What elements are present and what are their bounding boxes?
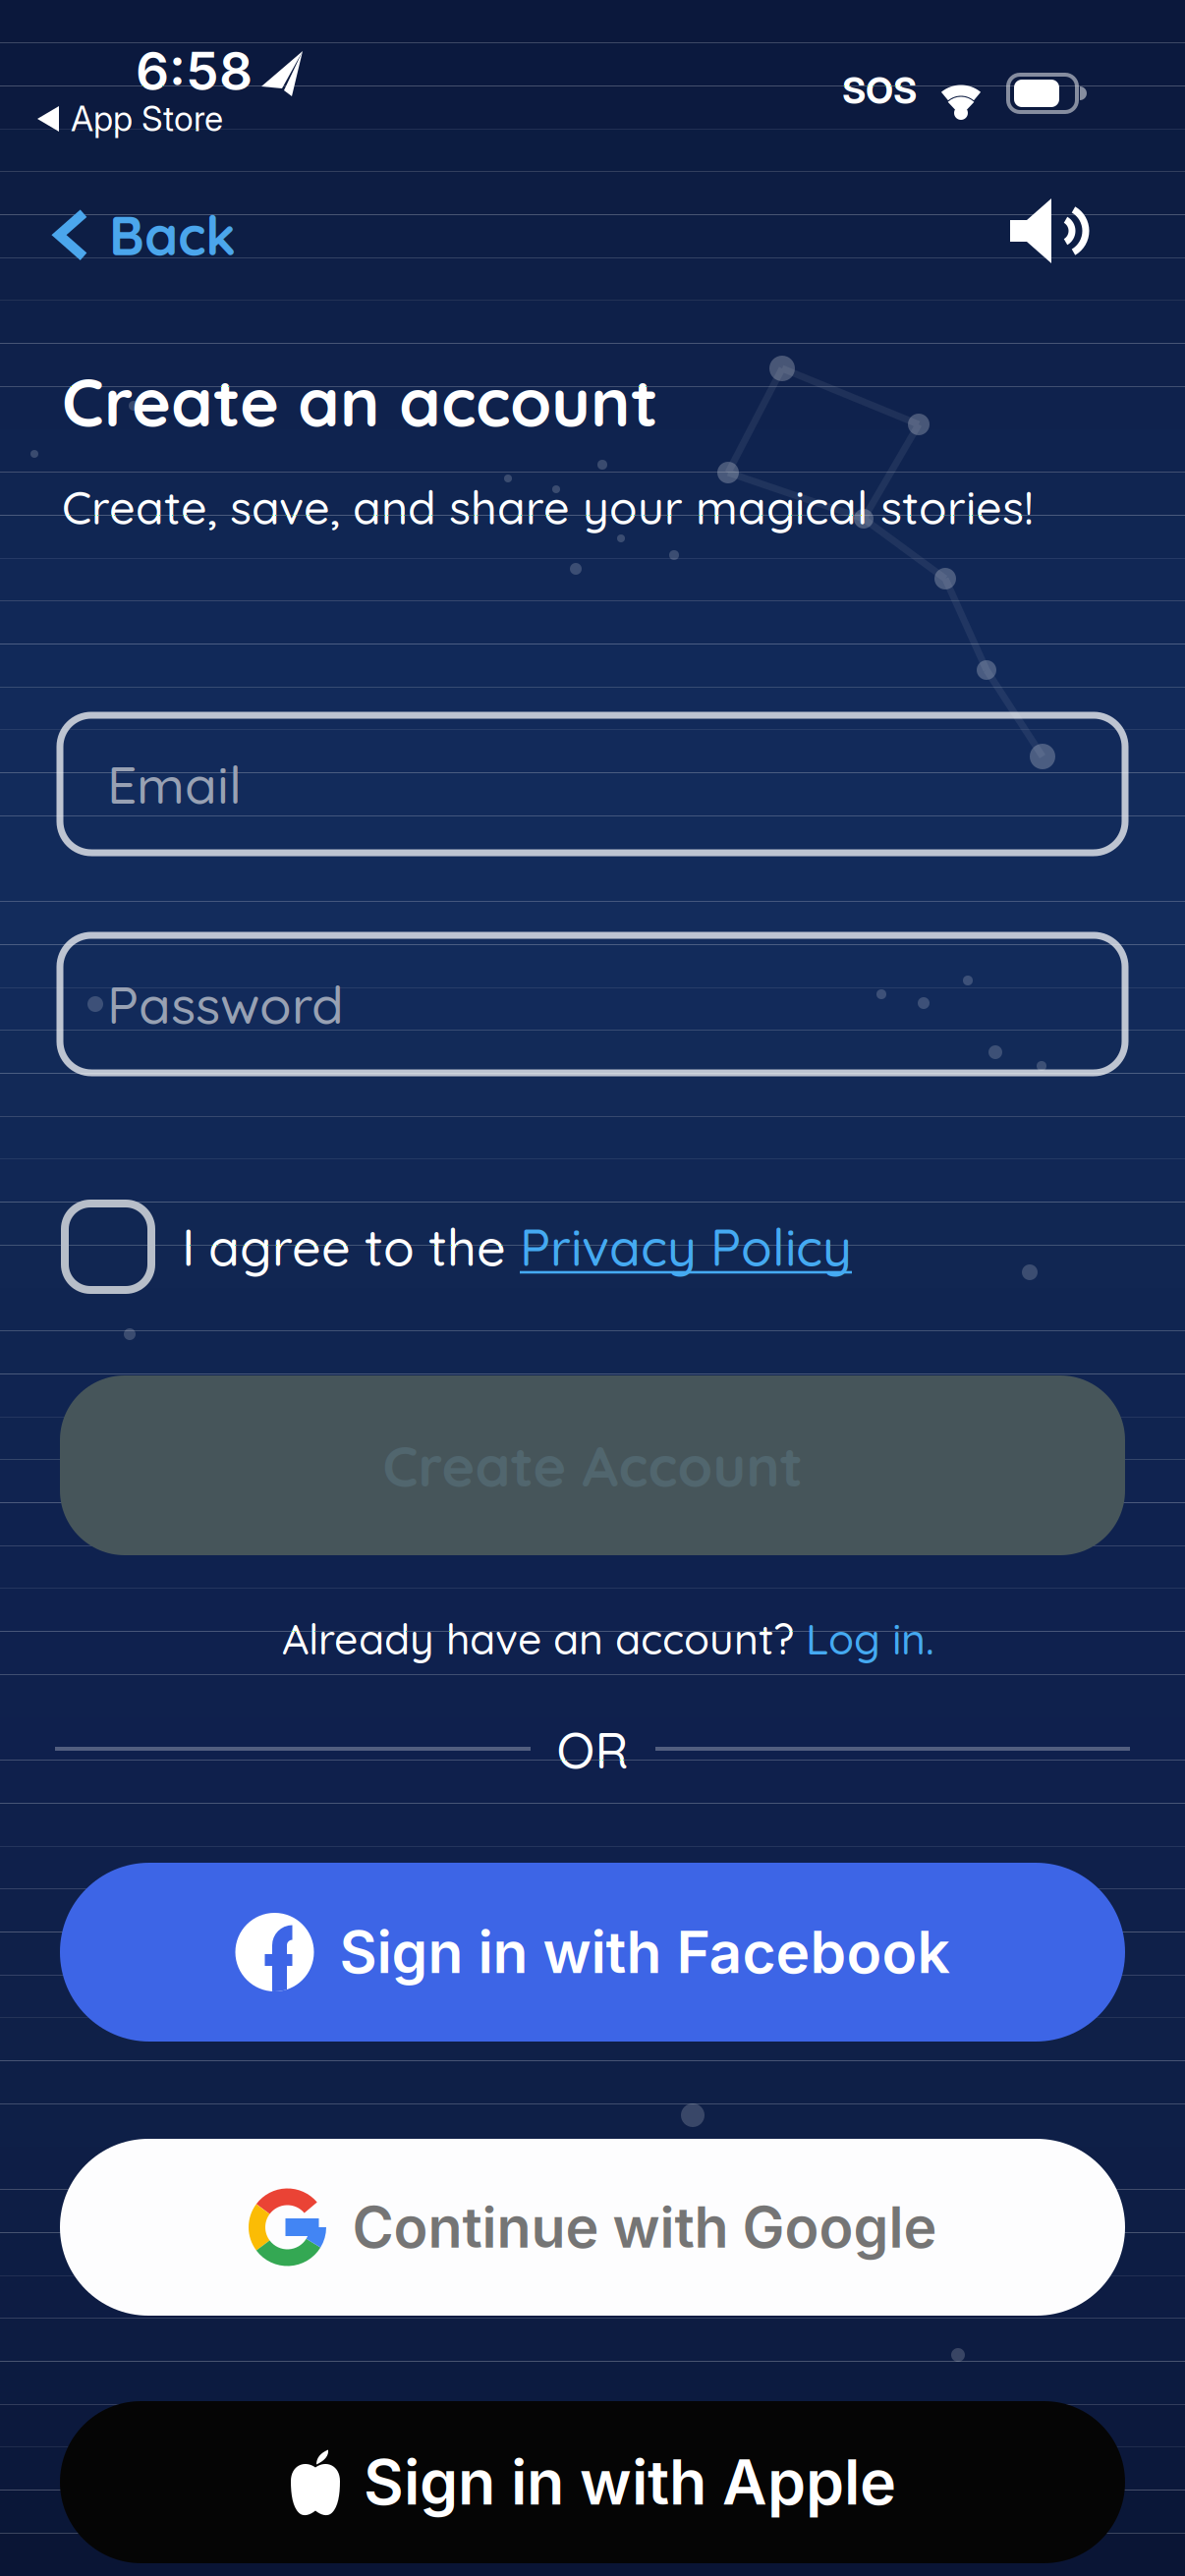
staticText: Password [107, 971, 344, 1037]
button[interactable]: Already have an account? [282, 1609, 934, 1668]
staticText: Log in. [806, 1613, 934, 1665]
staticText: Already have an account? [282, 1613, 806, 1665]
staticText: Back [109, 201, 236, 269]
button[interactable]: Back [59, 201, 236, 269]
staticText: Sign in with Apple [364, 2445, 896, 2519]
button[interactable]: Sign in with Facebook [60, 1863, 1125, 2042]
staticText: Sign in with Facebook [339, 1917, 950, 1987]
button[interactable]: Privacy Policy [182, 1204, 852, 1290]
staticText: OR [557, 1719, 628, 1781]
staticText: Privacy Policy [520, 1215, 852, 1279]
staticText: App Store [71, 98, 223, 139]
button[interactable]: I agree to the Privacy Policy [65, 1204, 151, 1290]
staticText: SOS [842, 68, 917, 113]
staticText: Create an account [62, 360, 658, 443]
staticText: I agree to the [182, 1215, 520, 1279]
button[interactable]: Sound [1010, 198, 1091, 263]
button[interactable]: Password [60, 935, 1125, 1073]
staticText: 6:58 [136, 39, 253, 103]
button[interactable]: Sign in with Apple [60, 2401, 1125, 2563]
button[interactable]: Email [60, 715, 1125, 853]
staticText: Create Account [383, 1430, 802, 1501]
staticText: Email [107, 751, 242, 817]
button[interactable]: Continue with Google [60, 2139, 1125, 2316]
button[interactable]: Back to App Store [37, 98, 223, 139]
staticText: Continue with Google [352, 2193, 937, 2261]
staticText: Create, save, and share your magical sto… [62, 478, 1034, 536]
button[interactable]: Create Account [60, 1375, 1125, 1555]
